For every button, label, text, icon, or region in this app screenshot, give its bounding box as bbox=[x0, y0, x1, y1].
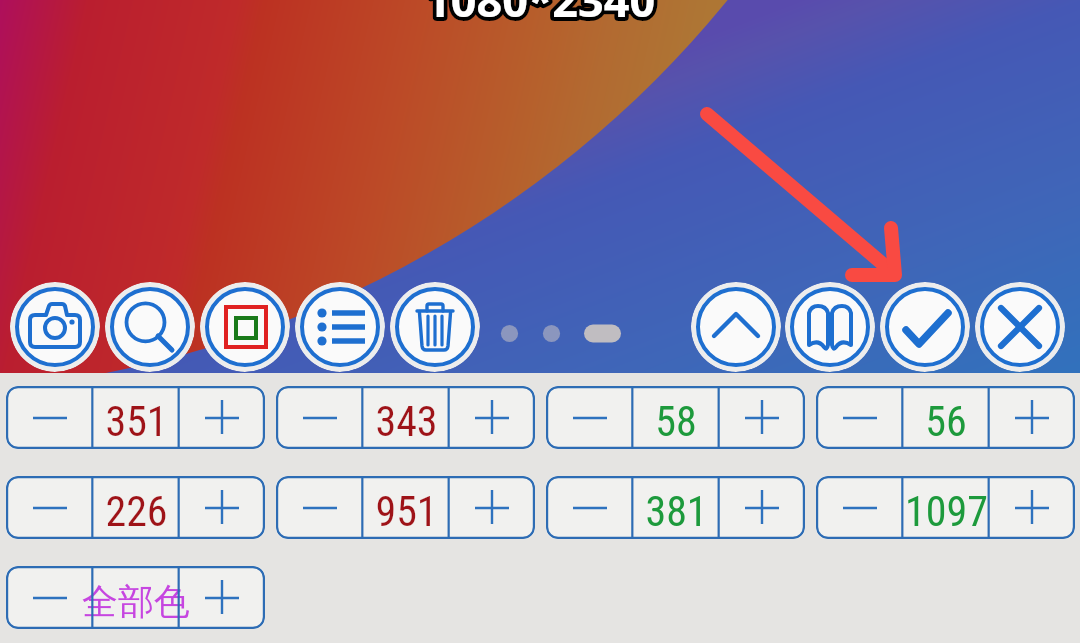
staticText: 951 bbox=[375, 487, 438, 536]
button[interactable]: Confirm bbox=[880, 282, 970, 372]
button[interactable]: Decrease bbox=[546, 386, 633, 449]
button[interactable]: Delete bbox=[390, 282, 480, 372]
button[interactable]: Increase bbox=[179, 476, 265, 539]
staticText: 351 bbox=[105, 397, 168, 446]
button[interactable]: Increase bbox=[449, 386, 535, 449]
button[interactable]: 351 bbox=[93, 386, 179, 449]
button[interactable]: Collapse bbox=[691, 282, 781, 372]
button[interactable]: Increase bbox=[719, 476, 805, 539]
button[interactable]: Decrease bbox=[6, 386, 93, 449]
button[interactable]: Increase bbox=[989, 476, 1075, 539]
button[interactable]: Decrease bbox=[546, 476, 633, 539]
staticText: 58 bbox=[655, 397, 697, 446]
button[interactable]: Decrease bbox=[276, 476, 363, 539]
button[interactable]: 全部色 bbox=[93, 566, 179, 629]
button[interactable]: 951 bbox=[363, 476, 449, 539]
staticText: 226 bbox=[105, 487, 168, 536]
button[interactable]: Decrease bbox=[6, 476, 93, 539]
button[interactable]: Increase bbox=[179, 566, 265, 629]
button[interactable]: Increase bbox=[989, 386, 1075, 449]
button[interactable]: Search bbox=[105, 282, 195, 372]
button[interactable]: Increase bbox=[179, 386, 265, 449]
button[interactable]: 56 bbox=[903, 386, 989, 449]
button[interactable]: Decrease bbox=[6, 566, 93, 629]
button[interactable]: 1097 bbox=[903, 476, 989, 539]
button[interactable]: Increase bbox=[719, 386, 805, 449]
button[interactable]: 226 bbox=[93, 476, 179, 539]
staticText: 56 bbox=[925, 397, 967, 446]
staticText: 1080*2340 bbox=[425, 0, 656, 30]
button[interactable]: Decrease bbox=[276, 386, 363, 449]
button[interactable]: Decrease bbox=[816, 386, 903, 449]
button[interactable]: Increase bbox=[449, 476, 535, 539]
staticText: 343 bbox=[375, 397, 438, 446]
button[interactable]: 58 bbox=[633, 386, 719, 449]
button[interactable]: Decrease bbox=[816, 476, 903, 539]
button[interactable]: Close bbox=[975, 282, 1065, 372]
staticText: 1097 bbox=[905, 487, 988, 536]
staticText: 381 bbox=[645, 487, 708, 536]
button[interactable]: 343 bbox=[363, 386, 449, 449]
button[interactable]: Camera bbox=[10, 282, 100, 372]
staticText: 1080*2340 bbox=[425, 0, 656, 30]
button[interactable]: Crop bbox=[200, 282, 290, 372]
button[interactable]: List bbox=[295, 282, 385, 372]
button[interactable]: Book bbox=[785, 282, 875, 372]
staticText: 全部色 bbox=[82, 579, 190, 624]
button[interactable]: 381 bbox=[633, 476, 719, 539]
